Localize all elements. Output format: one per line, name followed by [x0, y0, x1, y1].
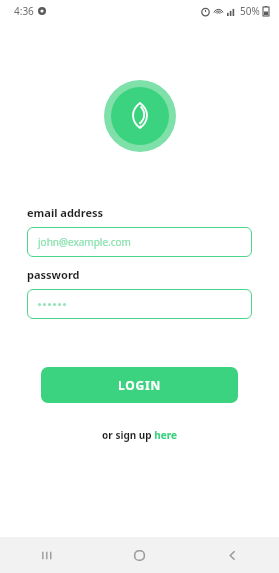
button[interactable]: Back — [186, 537, 279, 573]
button[interactable]: john@example.com — [27, 227, 252, 257]
staticText: or sign up here — [102, 428, 177, 442]
staticText: LOGIN — [118, 377, 162, 393]
button[interactable]: or sign up here — [96, 425, 183, 445]
button[interactable]: LOGIN — [41, 367, 238, 403]
staticText: email address — [27, 205, 104, 220]
button[interactable]: Recent apps — [0, 537, 93, 573]
staticText: john@example.com — [38, 235, 131, 249]
staticText: 50% — [240, 4, 260, 18]
staticText: 4:36 — [14, 4, 34, 18]
button[interactable]: Home — [93, 537, 186, 573]
button[interactable] — [27, 289, 252, 319]
staticText: password — [27, 267, 80, 282]
